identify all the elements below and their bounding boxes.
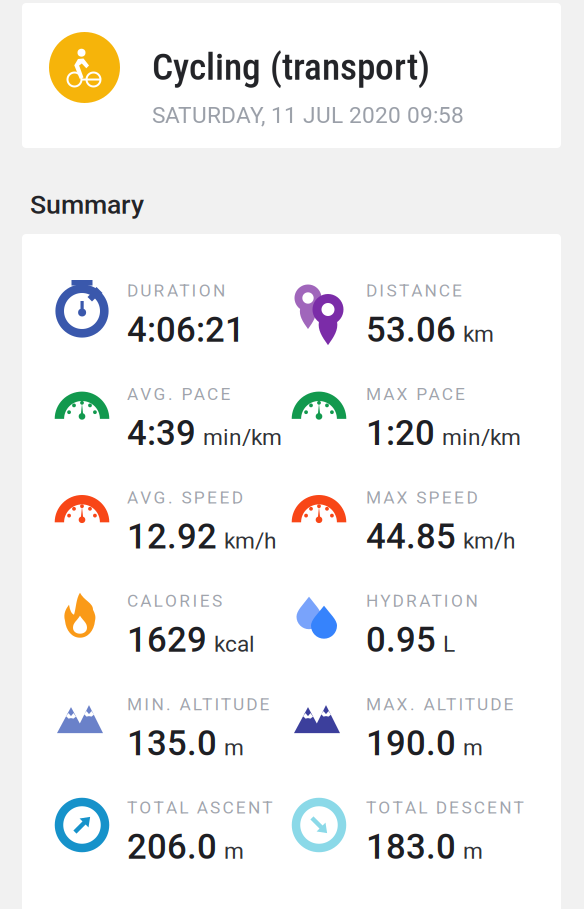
staticText: MIN. ALTITUDE <box>127 694 270 714</box>
staticText: AVG. PACE <box>127 384 230 404</box>
staticText: MAX PACE <box>366 384 465 404</box>
staticText: TOTAL DESCENT <box>366 797 524 818</box>
staticText: km/h <box>224 527 276 554</box>
staticText: 1629 <box>127 620 207 660</box>
staticText: MAX SPEED <box>366 487 477 508</box>
staticText: HYDRATION <box>366 591 477 611</box>
staticText: 12.92 <box>127 516 217 557</box>
staticText: m <box>463 734 483 761</box>
staticText: DURATION <box>127 280 225 301</box>
staticText: m <box>224 734 244 761</box>
staticText: kcal <box>214 631 255 657</box>
staticText: km/h <box>463 527 515 554</box>
staticText: min/km <box>442 424 521 451</box>
staticText: 4:06:21 <box>127 309 245 350</box>
staticText: 135.0 <box>127 723 217 764</box>
staticText: MAX. ALTITUDE <box>366 694 514 714</box>
staticText: AVG. SPEED <box>127 487 243 508</box>
staticText: 44.85 <box>366 516 456 557</box>
staticText: 4:39 <box>127 413 196 453</box>
staticText: Summary <box>30 189 144 220</box>
staticText: km <box>463 321 494 347</box>
staticText: L <box>443 631 455 657</box>
staticText: 183.0 <box>366 826 456 867</box>
staticText: 53.06 <box>366 309 456 350</box>
button[interactable]: Cycling (transport) <box>22 3 561 148</box>
staticText: 190.0 <box>366 723 456 764</box>
staticText: Cycling (transport) <box>152 45 430 89</box>
staticText: 1:20 <box>366 413 435 453</box>
staticText: SATURDAY, 11 JUL 2020 09:58 <box>152 102 464 129</box>
staticText: DISTANCE <box>366 280 462 301</box>
staticText: m <box>463 838 483 864</box>
staticText: min/km <box>203 424 282 451</box>
staticText: 0.95 <box>366 620 436 660</box>
staticText: CALORIES <box>127 591 222 611</box>
staticText: m <box>224 838 244 864</box>
staticText: 206.0 <box>127 826 217 867</box>
staticText: TOTAL ASCENT <box>127 797 272 818</box>
